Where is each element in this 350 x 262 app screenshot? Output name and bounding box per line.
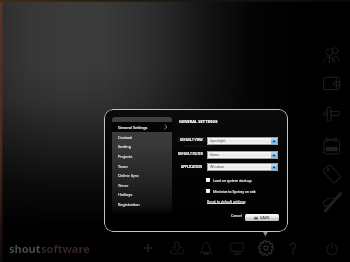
staticText: Team — [118, 164, 128, 169]
staticText: Load on system start-up — [213, 178, 252, 183]
button[interactable]: Projects — [112, 151, 172, 161]
staticText: General Settings — [118, 125, 148, 130]
button[interactable]: Window — [207, 163, 278, 171]
staticText: shout — [9, 241, 41, 256]
staticText: SAVE — [260, 215, 270, 220]
button[interactable]: Hotkeys — [112, 189, 172, 199]
button[interactable]: Sorting — [112, 141, 172, 151]
button[interactable]: SAVE — [245, 214, 279, 221]
staticText: Cancel — [231, 213, 242, 218]
staticText: DEFAULT VIEW — [180, 138, 203, 142]
button[interactable]: Tags — [321, 163, 343, 185]
staticText: Minimize to Systray on exit — [213, 189, 256, 194]
button[interactable]: Display — [229, 240, 245, 256]
staticText: DEFAULT FILTER — [178, 152, 203, 156]
button[interactable]: Registration — [112, 199, 172, 209]
staticText: Context — [118, 135, 132, 140]
button[interactable]: Inbox — [169, 240, 185, 256]
staticText: www.softpedia.com — [184, 144, 213, 148]
button[interactable]: General Settings — [112, 122, 172, 132]
staticText: Online Sync — [118, 173, 139, 178]
staticText: software — [41, 241, 90, 256]
button[interactable]: Context — [112, 132, 172, 142]
button[interactable]: Spotlight — [207, 137, 278, 145]
button[interactable]: Cancel — [230, 213, 243, 218]
staticText: Projects — [118, 154, 133, 159]
staticText: Timer — [118, 183, 129, 188]
button[interactable]: None — [207, 151, 278, 159]
button[interactable]: Contacts — [321, 42, 343, 64]
button[interactable]: Wallet — [321, 72, 343, 94]
staticText: Hotkeys — [118, 192, 133, 197]
button[interactable]: Load on system start-up — [206, 176, 252, 184]
button[interactable]: shout — [9, 241, 90, 256]
staticText: Sorting — [118, 144, 131, 149]
button[interactable]: Plugins — [321, 103, 343, 125]
button[interactable]: Minimize to Systray on exit — [206, 187, 256, 195]
button[interactable]: Settings — [258, 240, 274, 256]
staticText: APPLICATION — [181, 165, 203, 169]
staticText: Registration — [118, 202, 140, 207]
staticText: SOFTPEDIA — [177, 135, 215, 143]
button[interactable]: Alerts — [198, 240, 214, 256]
button[interactable]: Team — [112, 161, 172, 171]
button[interactable]: Help — [285, 240, 301, 256]
staticText: Reset to default settings — [207, 199, 246, 204]
button[interactable]: Timer — [112, 180, 172, 190]
staticText: Window — [210, 164, 224, 169]
button[interactable]: Flags — [321, 191, 343, 213]
staticText: GENERAL SETTINGS — [179, 119, 218, 124]
staticText: Spotlight — [210, 138, 226, 143]
button[interactable]: Reset to default settings — [207, 199, 246, 205]
button[interactable]: Online Sync — [112, 170, 172, 180]
button[interactable]: Power — [324, 240, 340, 256]
button[interactable]: Add — [140, 240, 156, 256]
staticText: None — [210, 152, 220, 157]
button[interactable]: Calendar — [321, 135, 343, 157]
